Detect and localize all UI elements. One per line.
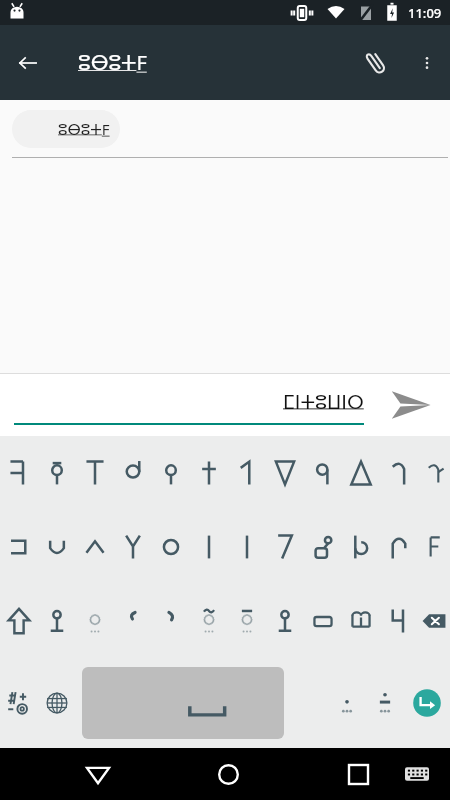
button[interactable] <box>0 436 38 510</box>
button[interactable] <box>418 436 450 510</box>
button[interactable] <box>342 510 380 584</box>
button[interactable] <box>380 436 418 510</box>
button[interactable]: Shift <box>0 584 38 658</box>
button[interactable] <box>190 510 228 584</box>
button[interactable] <box>152 584 190 658</box>
button[interactable] <box>304 436 342 510</box>
button[interactable] <box>38 584 76 658</box>
button[interactable] <box>380 510 418 584</box>
button[interactable] <box>114 436 152 510</box>
button[interactable] <box>266 584 304 658</box>
button[interactable] <box>152 436 190 510</box>
button[interactable] <box>190 436 228 510</box>
button[interactable]: Attach <box>348 35 404 91</box>
staticText: ⵓⴱⵓⵜF <box>58 119 110 139</box>
button[interactable]: ⵓⴱⵓⵜF <box>12 110 120 148</box>
staticText: 11:09 <box>408 4 442 22</box>
button[interactable] <box>342 436 380 510</box>
button[interactable] <box>0 510 38 584</box>
button[interactable] <box>328 675 366 731</box>
button[interactable] <box>380 584 418 658</box>
button[interactable] <box>266 510 304 584</box>
button[interactable]: Backspace <box>418 584 450 658</box>
button[interactable] <box>228 510 266 584</box>
button[interactable]: Space <box>82 667 284 739</box>
staticText: ⵎⵏⵜⵓⵡⵏⵔ <box>283 391 364 413</box>
button[interactable]: Recents <box>330 748 386 800</box>
button[interactable]: Hide keyboard <box>392 749 442 799</box>
button[interactable] <box>76 436 114 510</box>
button[interactable]: Home <box>200 748 256 800</box>
button[interactable] <box>228 584 266 658</box>
button[interactable]: More options <box>404 40 450 86</box>
button[interactable] <box>418 510 450 584</box>
button[interactable] <box>190 584 228 658</box>
button[interactable]: Enter <box>404 658 450 748</box>
button[interactable] <box>266 436 304 510</box>
button[interactable] <box>342 584 380 658</box>
button[interactable] <box>304 510 342 584</box>
button[interactable] <box>114 510 152 584</box>
button[interactable]: Back <box>0 35 56 91</box>
button[interactable]: Symbols <box>0 658 38 748</box>
staticText: ⵓⴱⵓⵜF <box>78 49 348 76</box>
button[interactable] <box>152 510 190 584</box>
button[interactable] <box>76 510 114 584</box>
button[interactable]: Change language <box>38 658 76 748</box>
button[interactable] <box>366 675 404 731</box>
button[interactable] <box>38 510 76 584</box>
button[interactable] <box>38 436 76 510</box>
button[interactable] <box>76 584 114 658</box>
button[interactable] <box>228 436 266 510</box>
button[interactable] <box>114 584 152 658</box>
button[interactable] <box>304 584 342 658</box>
button[interactable]: Back <box>70 748 126 800</box>
button[interactable]: Send <box>372 374 450 436</box>
